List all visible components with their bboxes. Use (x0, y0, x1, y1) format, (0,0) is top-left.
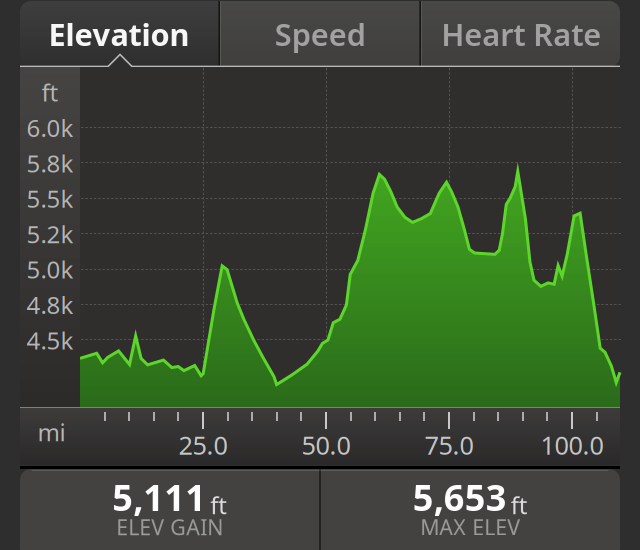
staticText: 50.0 (301, 428, 350, 462)
staticText: 75.0 (424, 428, 473, 462)
button[interactable]: Elevation (19, 1, 218, 67)
staticText: ft (41, 76, 58, 108)
staticText: 6.0k (26, 112, 73, 144)
button[interactable]: Heart Rate (422, 1, 620, 67)
staticText: 5.2k (26, 218, 73, 250)
staticText: ft (511, 489, 528, 521)
staticText: 5.5k (26, 183, 73, 214)
staticText: MAX ELEV (420, 513, 520, 541)
staticText: 25.0 (178, 428, 227, 462)
button[interactable]: 5,111 (20, 469, 319, 550)
staticText: Heart Rate (441, 14, 601, 54)
staticText: 5,111 (112, 473, 206, 521)
staticText: 5.8k (26, 147, 73, 179)
staticText: ft (210, 489, 227, 521)
staticText: ELEV GAIN (116, 513, 223, 541)
staticText: Elevation (48, 14, 189, 54)
button[interactable]: 5,653 (321, 469, 620, 550)
staticText: Speed (275, 14, 366, 54)
staticText: 5,653 (413, 473, 507, 521)
staticText: mi (37, 416, 65, 448)
staticText: 4.5k (26, 324, 73, 356)
button[interactable]: Speed (221, 1, 419, 67)
staticText: 100.0 (540, 428, 603, 462)
staticText: 4.8k (26, 289, 73, 321)
staticText: 5.0k (26, 253, 73, 285)
